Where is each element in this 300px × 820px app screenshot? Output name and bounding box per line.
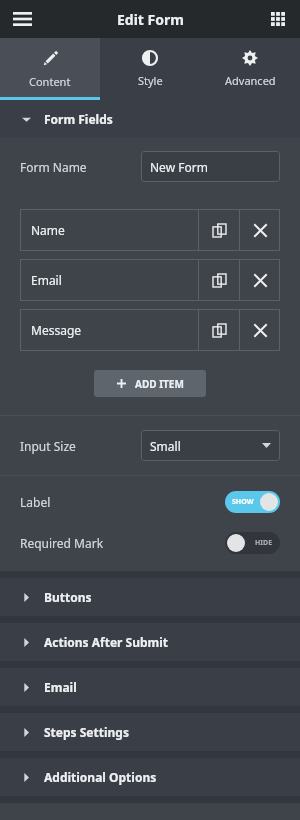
- staticText: New Form: [150, 159, 208, 175]
- button[interactable]: Label toggle: [225, 491, 280, 513]
- button[interactable]: Remove Name: [240, 209, 280, 251]
- staticText: SHOW: [232, 497, 254, 507]
- button[interactable]: Duplicate Email: [199, 259, 239, 301]
- staticText: Buttons: [44, 589, 92, 605]
- staticText: Additional Options: [44, 769, 157, 785]
- staticText: Input Size: [20, 438, 141, 454]
- staticText: Required Mark: [20, 535, 225, 551]
- button[interactable]: Small: [141, 430, 280, 461]
- staticText: Name: [31, 222, 65, 238]
- button[interactable]: Menu: [7, 4, 37, 34]
- button[interactable]: Email: [0, 668, 300, 706]
- button[interactable]: Buttons: [0, 578, 300, 616]
- staticText: Steps Settings: [44, 724, 129, 740]
- button[interactable]: Advanced: [200, 38, 300, 100]
- button[interactable]: Form Fields: [0, 100, 300, 138]
- button[interactable]: Required Mark toggle: [225, 532, 280, 554]
- button[interactable]: Name: [20, 209, 198, 251]
- button[interactable]: Actions After Submit: [0, 623, 300, 661]
- button[interactable]: Apps: [264, 5, 292, 33]
- button[interactable]: Duplicate Name: [199, 209, 239, 251]
- staticText: HIDE: [255, 538, 273, 548]
- staticText: Style: [138, 73, 163, 88]
- button[interactable]: Remove Email: [240, 259, 280, 301]
- button[interactable]: Style: [100, 38, 200, 100]
- staticText: Actions After Submit: [44, 634, 169, 650]
- button[interactable]: Remove Message: [240, 309, 280, 351]
- button[interactable]: New Form: [141, 151, 280, 182]
- button[interactable]: Steps Settings: [0, 713, 300, 751]
- button[interactable]: Message: [20, 309, 198, 351]
- button[interactable]: Duplicate Message: [199, 309, 239, 351]
- button[interactable]: Content: [0, 38, 100, 100]
- staticText: Content: [29, 74, 71, 89]
- button[interactable]: ADD ITEM: [94, 370, 206, 397]
- staticText: Email: [31, 272, 62, 288]
- staticText: Message: [31, 322, 82, 338]
- button[interactable]: Additional Options: [0, 758, 300, 796]
- staticText: Form Fields: [44, 111, 113, 127]
- staticText: Form Name: [20, 159, 141, 175]
- staticText: Email: [44, 679, 77, 695]
- staticText: Advanced: [225, 73, 276, 88]
- staticText: Small: [150, 438, 181, 454]
- staticText: ADD ITEM: [135, 377, 184, 391]
- staticText: Edit Form: [117, 10, 184, 29]
- staticText: Label: [20, 494, 225, 510]
- button[interactable]: Email: [20, 259, 198, 301]
